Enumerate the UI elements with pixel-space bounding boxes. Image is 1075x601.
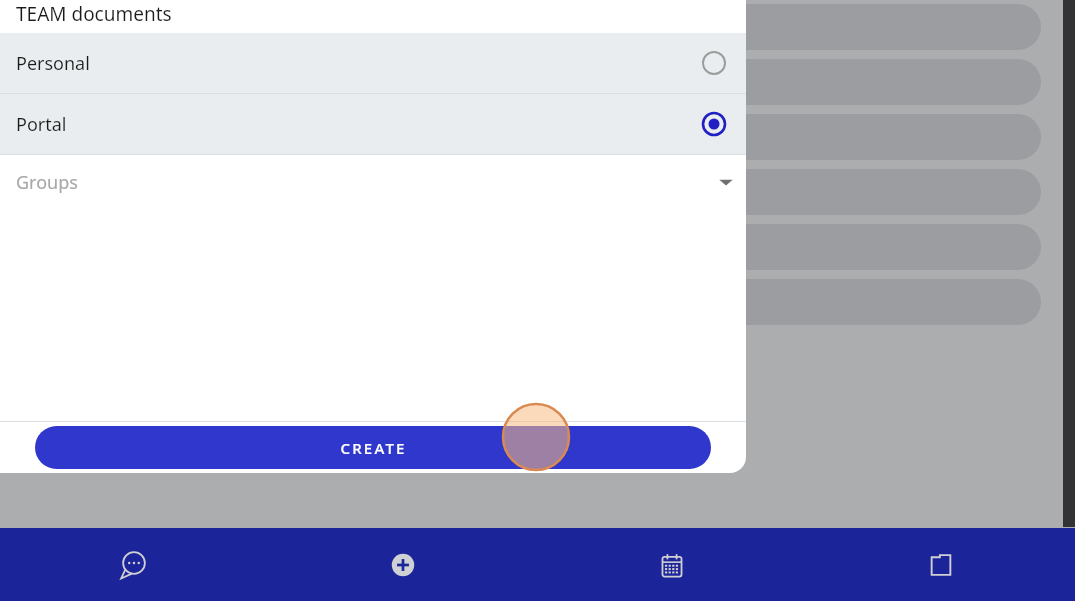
staticText: Groups [16,170,78,195]
staticText: CREATE [340,438,407,458]
button[interactable]: Portal [0,94,746,154]
button[interactable]: Calendar [537,528,806,601]
staticText: Personal [16,51,90,76]
button[interactable]: Groups [0,155,746,209]
button[interactable]: Chat [0,528,268,601]
staticText: TEAM documents [16,1,172,27]
button[interactable]: Add [268,528,537,601]
button[interactable]: Personal [0,33,746,93]
button[interactable]: CREATE [35,426,711,469]
button[interactable]: Files [806,528,1075,601]
staticText: Portal [16,112,67,137]
